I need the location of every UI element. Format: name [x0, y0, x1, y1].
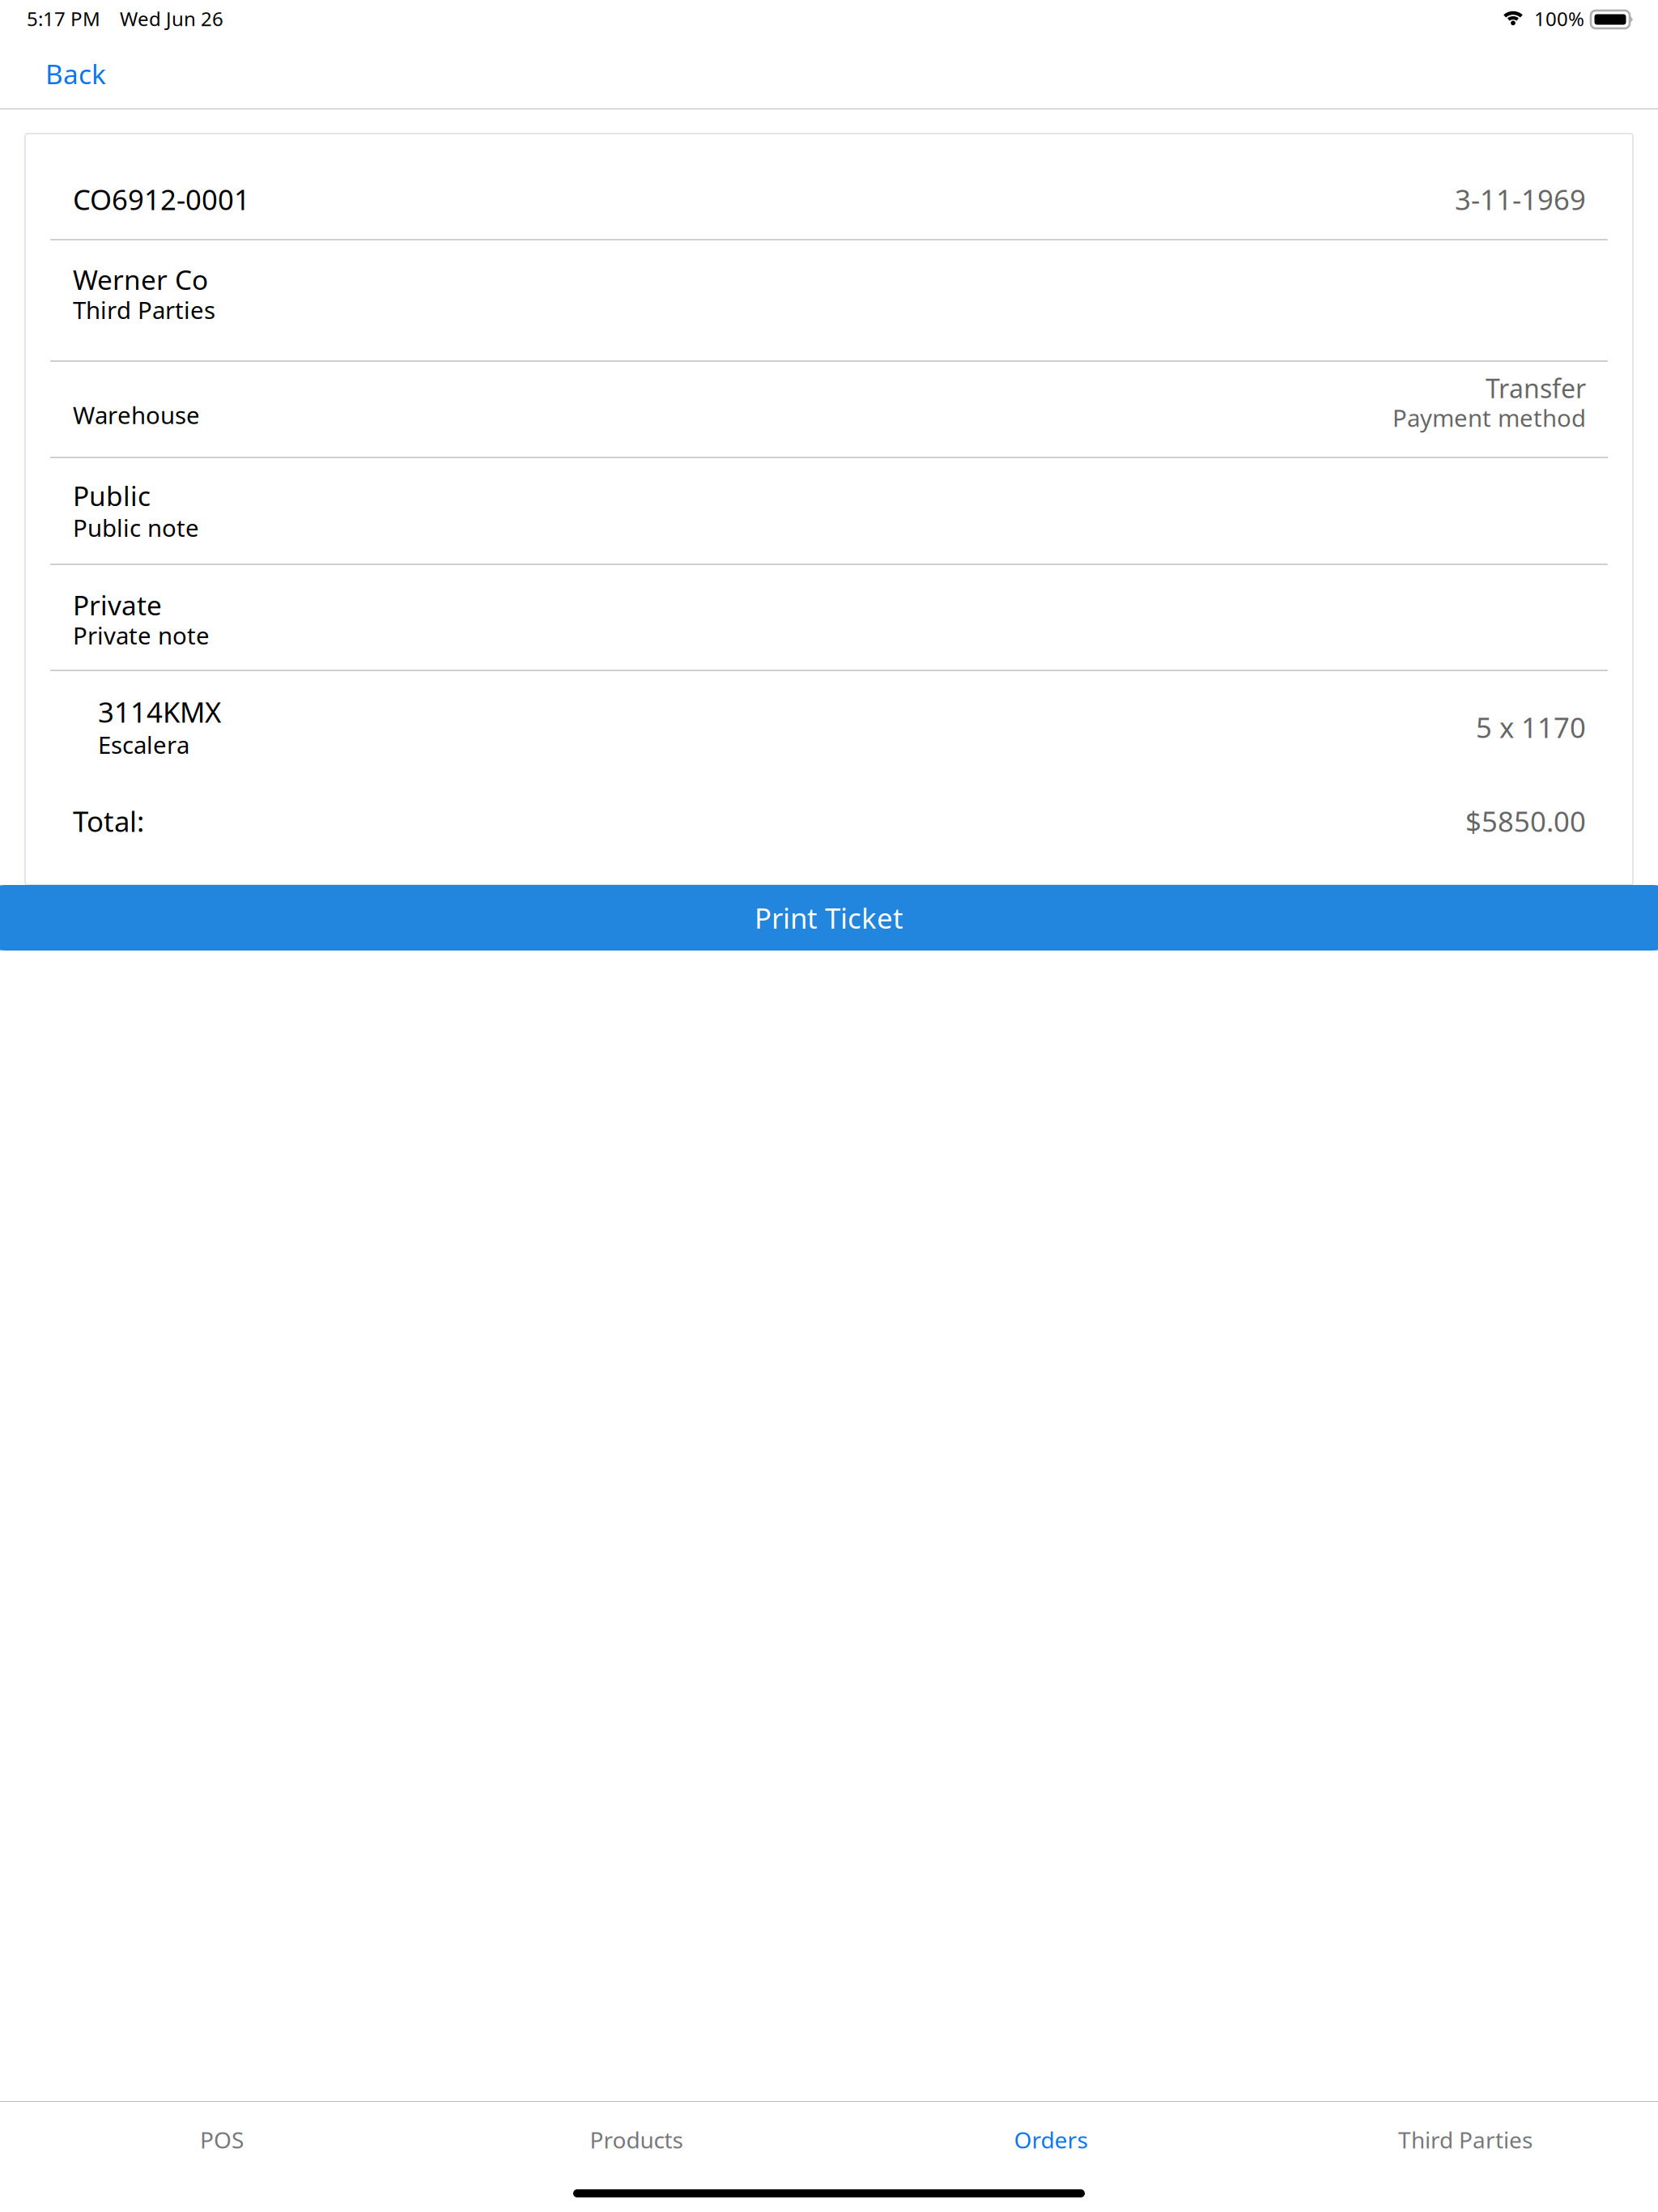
button[interactable]: Back	[0, 47, 130, 107]
staticText: 5 x 1170	[1476, 708, 1586, 746]
staticText: Third Parties	[1398, 2125, 1533, 2155]
staticText: Escalera	[98, 729, 189, 760]
staticText: $5850.00	[1465, 802, 1586, 840]
staticText: Print Ticket	[755, 899, 903, 936]
staticText: Public note	[73, 512, 199, 544]
staticText: 5:17 PM	[27, 6, 100, 31]
button[interactable]: POS	[15, 2102, 429, 2165]
staticText: 3114KMX	[98, 693, 221, 730]
button[interactable]: Products	[429, 2102, 844, 2165]
staticText: Orders	[1014, 2125, 1088, 2155]
staticText: Private note	[73, 620, 210, 651]
staticText: Transfer	[1486, 371, 1586, 405]
staticText: Products	[590, 2125, 683, 2155]
button[interactable]: Print Ticket	[0, 885, 1658, 951]
staticText: Werner Co	[73, 262, 208, 297]
button[interactable]: Orders	[844, 2102, 1258, 2165]
staticText: Warehouse	[73, 399, 200, 431]
staticText: Payment method	[1392, 402, 1586, 434]
staticText: Wed Jun 26	[120, 6, 223, 31]
staticText: POS	[200, 2125, 244, 2155]
staticText: 100%	[1534, 6, 1584, 31]
staticText: Third Parties	[73, 294, 215, 326]
staticText: Public	[73, 478, 151, 514]
staticText: Back	[45, 56, 106, 92]
staticText: Total:	[73, 802, 144, 840]
staticText: Private	[73, 587, 162, 623]
staticText: CO6912-0001	[73, 181, 250, 218]
button[interactable]: Third Parties	[1258, 2102, 1658, 2165]
staticText: 3-11-1969	[1455, 181, 1586, 218]
